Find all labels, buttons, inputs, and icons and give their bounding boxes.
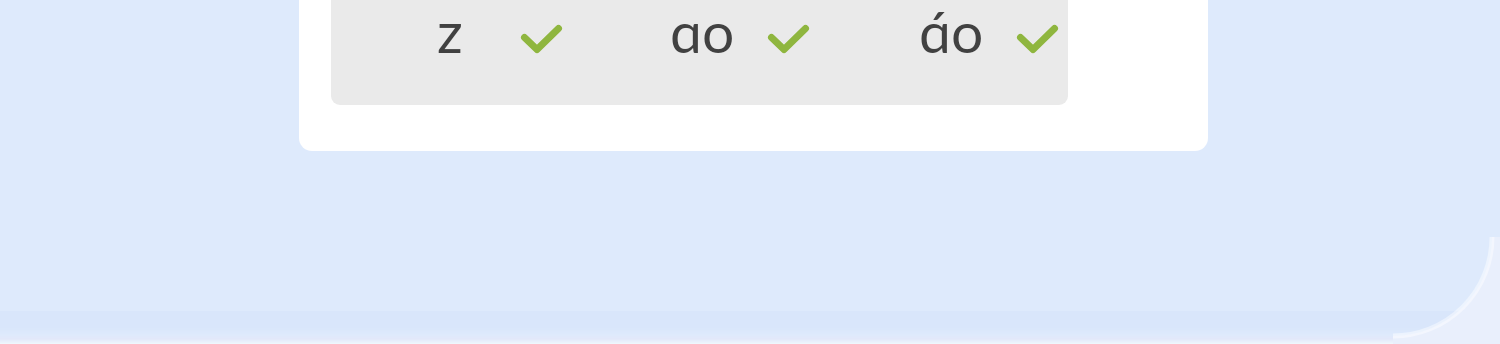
button[interactable]: ɑ́o	[905, 0, 1058, 48]
other: Correct	[768, 25, 809, 54]
button[interactable]: ɑo	[656, 0, 809, 48]
staticText: z	[437, 0, 463, 65]
other: Correct	[521, 25, 562, 54]
other: Correct	[1017, 25, 1058, 54]
staticText: ɑo	[670, 0, 735, 65]
staticText: ɑ́o	[919, 0, 984, 65]
button[interactable]: z	[423, 0, 562, 48]
